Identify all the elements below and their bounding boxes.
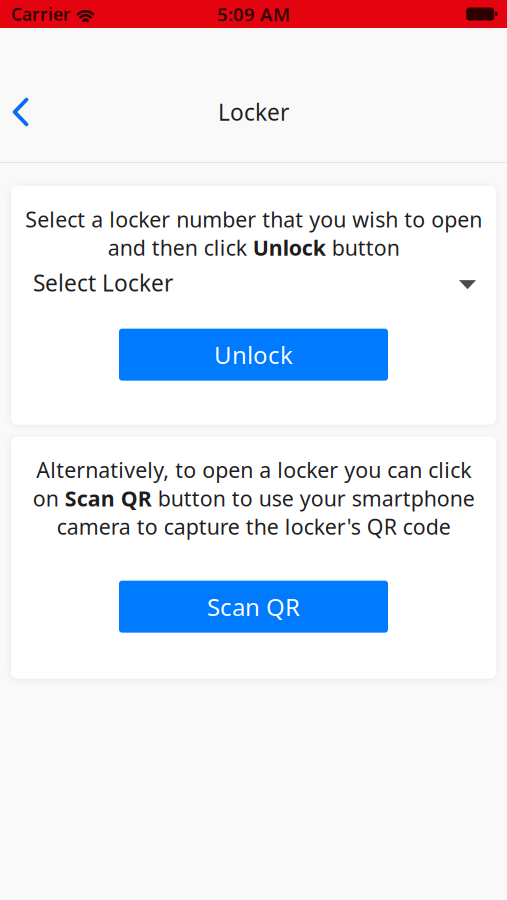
staticText: Select Locker — [33, 268, 173, 298]
staticText: Alternatively, to open a locker you can … — [32, 456, 474, 541]
staticText: Scan QR — [207, 591, 300, 623]
button[interactable]: Select Locker — [11, 266, 496, 300]
staticText: Carrier — [11, 2, 71, 25]
staticText: Select a locker number that you wish to … — [25, 205, 482, 262]
button[interactable]: Scan QR — [119, 581, 388, 633]
staticText: Locker — [218, 97, 289, 127]
button[interactable]: Back — [0, 90, 52, 134]
button[interactable]: Unlock — [119, 329, 388, 381]
staticText: Unlock — [214, 339, 293, 371]
staticText: 5:09 AM — [217, 2, 290, 26]
